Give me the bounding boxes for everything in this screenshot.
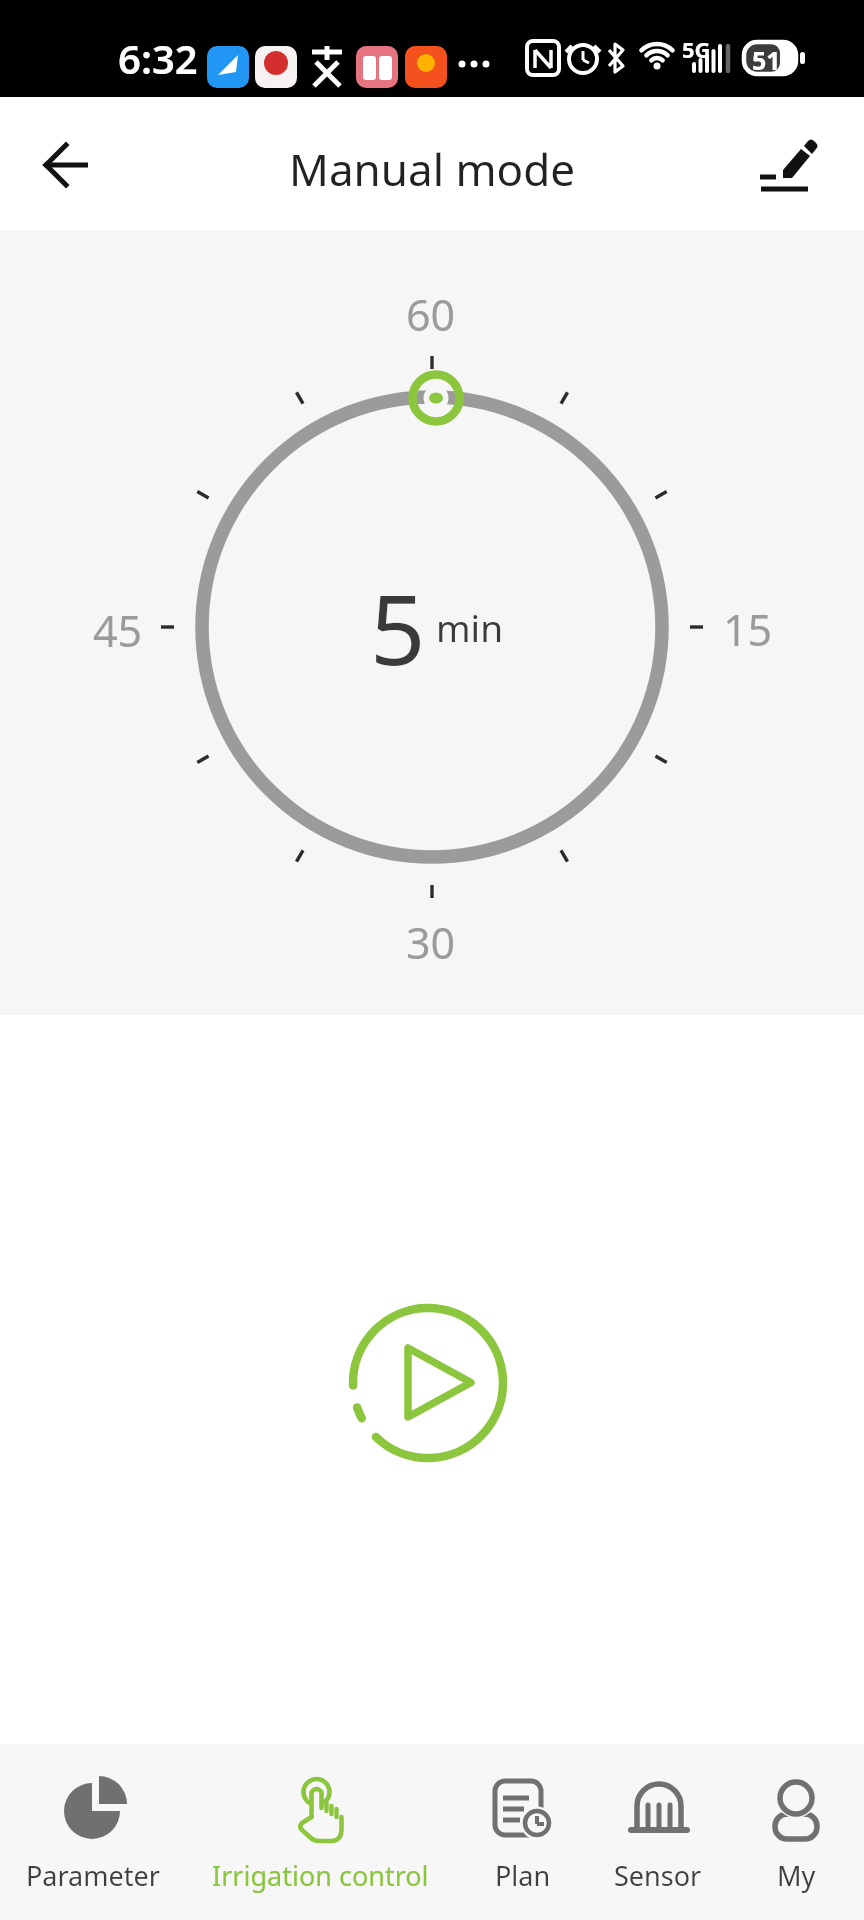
- button[interactable]: [27, 125, 107, 205]
- staticText: 5: [370, 561, 426, 693]
- staticText: Manual mode: [289, 139, 576, 199]
- staticText: My: [777, 1857, 816, 1894]
- button[interactable]: My: [726, 1777, 864, 1894]
- staticText: 5G: [682, 34, 711, 64]
- staticText: Sensor: [614, 1857, 702, 1894]
- staticText: Plan: [495, 1857, 551, 1894]
- staticText: Irrigation control: [212, 1857, 429, 1894]
- button[interactable]: Plan: [443, 1777, 603, 1894]
- staticText: 60: [406, 285, 456, 344]
- button[interactable]: [740, 125, 830, 215]
- staticText: min: [436, 602, 504, 652]
- button[interactable]: Parameter: [0, 1777, 193, 1894]
- staticText: 6:32: [118, 31, 198, 85]
- button[interactable]: Irrigation control: [190, 1777, 450, 1894]
- button[interactable]: Sensor: [578, 1777, 738, 1894]
- staticText: 15: [723, 600, 773, 659]
- staticText: Parameter: [26, 1857, 160, 1894]
- button[interactable]: [338, 1293, 518, 1473]
- staticText: 45: [93, 601, 143, 660]
- staticText: 30: [406, 913, 456, 972]
- staticText: 51: [752, 43, 781, 73]
